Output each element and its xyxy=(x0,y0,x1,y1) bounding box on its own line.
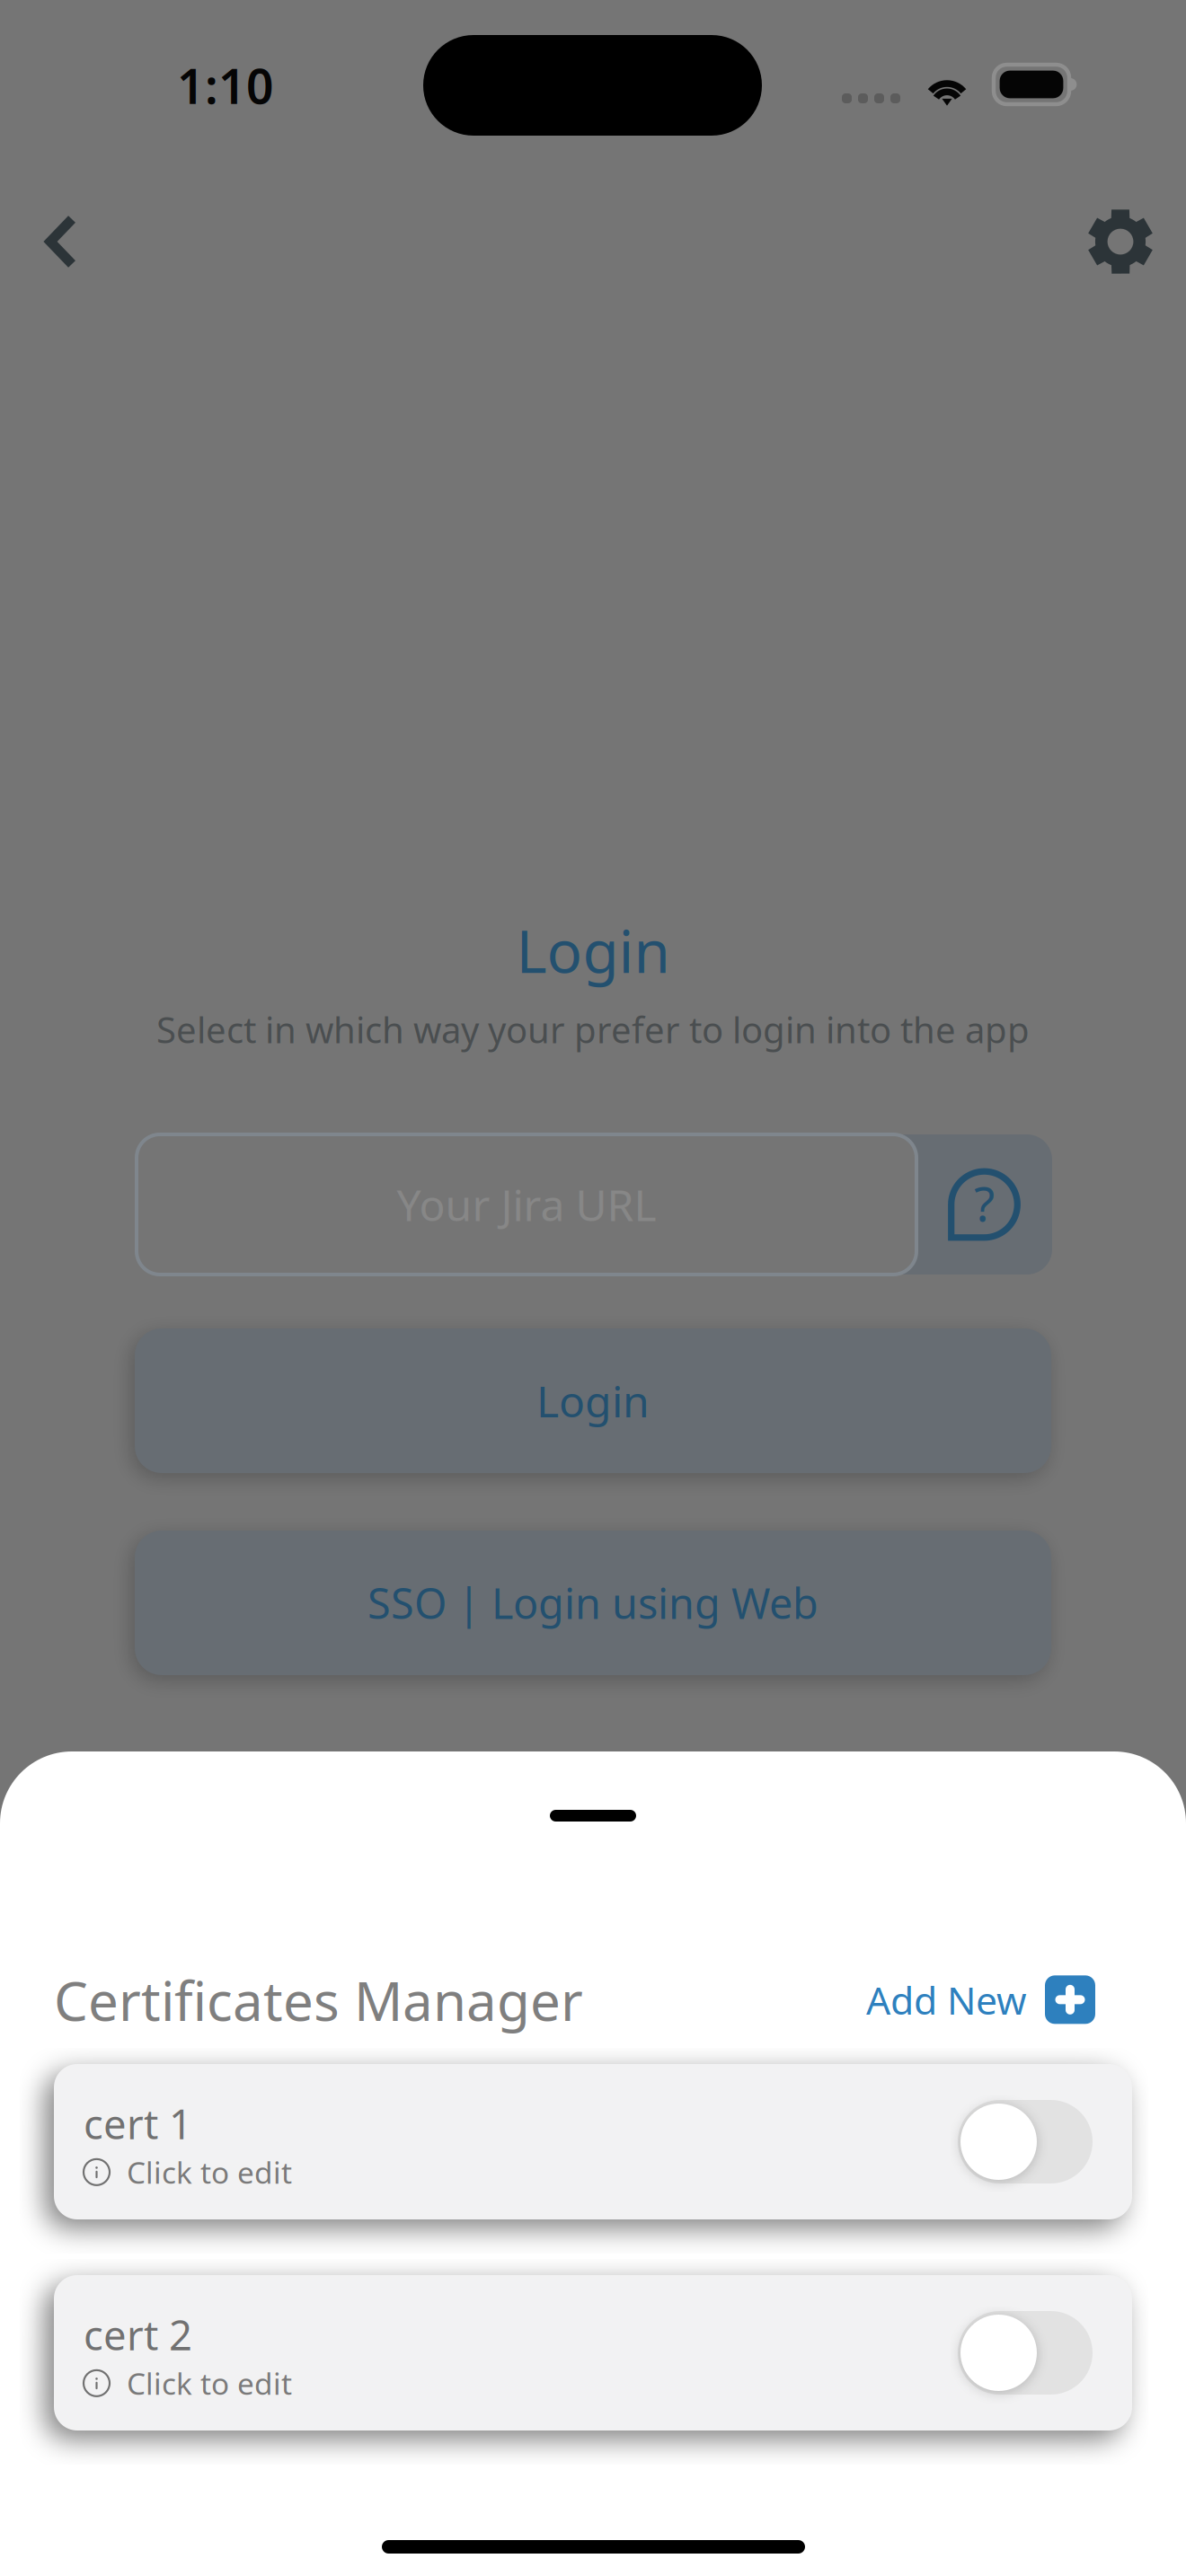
button[interactable]: SSO | Login using Web xyxy=(135,1531,1051,1675)
button[interactable]: Settings xyxy=(1071,192,1170,291)
button[interactable]: cert 2 xyxy=(54,2275,1132,2430)
button[interactable]: Enable cert 2 xyxy=(958,2311,1093,2395)
staticText: Certificates Manager xyxy=(54,1964,583,2036)
staticText: Select in which way your prefer to login… xyxy=(156,1005,1030,1053)
staticText: Login xyxy=(516,911,670,989)
button[interactable]: Add New xyxy=(866,1974,1095,2025)
staticText: Click to edit xyxy=(127,2363,292,2403)
staticText: Click to edit xyxy=(127,2152,292,2192)
button[interactable]: cert 1 xyxy=(54,2064,1132,2219)
button[interactable]: Back xyxy=(12,192,111,291)
staticText: cert 1 xyxy=(84,2096,192,2150)
button[interactable]: What is my Jira URL? xyxy=(916,1134,1052,1275)
staticText: Your Jira URL xyxy=(397,1176,656,1233)
staticText: cert 2 xyxy=(84,2307,192,2362)
staticText: Add New xyxy=(866,1974,1027,2025)
button[interactable]: Enable cert 1 xyxy=(958,2100,1093,2183)
staticText: Login xyxy=(536,1372,650,1429)
staticText: 1:10 xyxy=(177,54,274,117)
button[interactable]: Login xyxy=(135,1328,1051,1473)
staticText: SSO | Login using Web xyxy=(367,1575,819,1631)
staticText: ? xyxy=(974,1171,995,1235)
